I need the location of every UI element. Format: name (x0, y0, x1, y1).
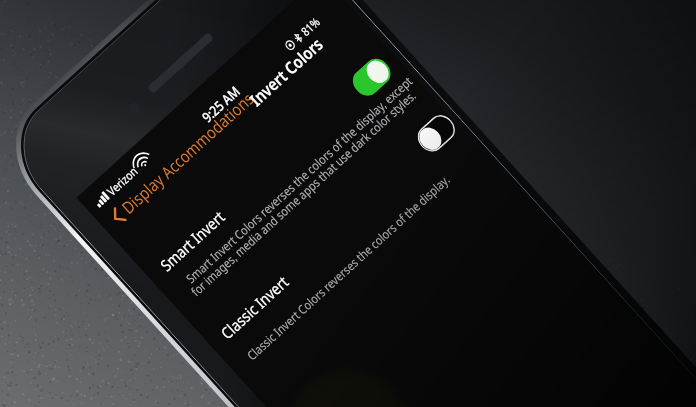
button[interactable]: Classic Invert (216, 186, 387, 344)
staticText: Smart Invert (156, 206, 230, 276)
button[interactable]: Display Accommodations (107, 87, 259, 228)
staticText: Classic Invert (216, 271, 293, 344)
button[interactable]: Classic Invert off (412, 110, 460, 157)
button[interactable]: Smart Invert on (348, 53, 396, 101)
staticText: 9:25 AM (198, 82, 244, 126)
staticText: for images, media and some apps that use… (188, 87, 420, 300)
button[interactable]: Smart Invert (156, 118, 327, 276)
staticText: 81% (297, 14, 323, 39)
staticText: Smart Invert Colors reverses the colors … (183, 73, 416, 287)
staticText: Display Accommodations (117, 87, 259, 219)
staticText: Verizon (103, 162, 141, 199)
staticText: Classic Invert Colors reverses the color… (243, 171, 454, 364)
staticText: Invert Colors (245, 32, 328, 111)
